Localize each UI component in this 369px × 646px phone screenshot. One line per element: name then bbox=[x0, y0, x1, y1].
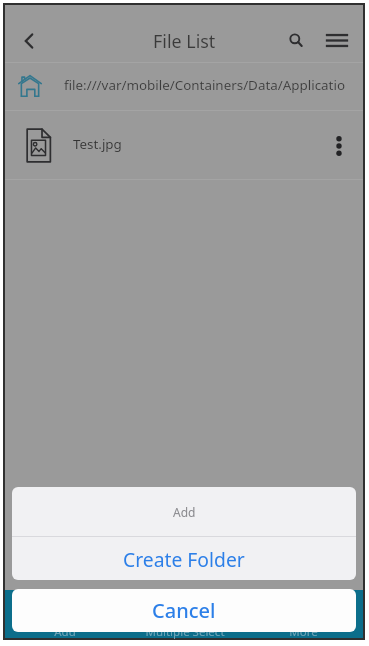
button[interactable]: Cancel bbox=[12, 589, 356, 632]
staticText: file:///var/mobile/Containers/Data/Appli… bbox=[64, 76, 346, 94]
button[interactable]: Back bbox=[13, 19, 53, 59]
staticText: Create Folder bbox=[123, 546, 245, 572]
button[interactable]: Menu bbox=[317, 19, 357, 59]
button[interactable]: More options bbox=[322, 129, 356, 163]
button[interactable]: Search bbox=[277, 19, 317, 59]
staticText: Cancel bbox=[152, 597, 216, 624]
button[interactable]: Multiple Select bbox=[125, 590, 244, 638]
button[interactable]: Add bbox=[5, 590, 125, 638]
button[interactable]: Create Folder bbox=[12, 537, 356, 580]
staticText: File List bbox=[153, 29, 216, 53]
staticText: Add bbox=[54, 624, 76, 640]
button[interactable]: Test.jpg bbox=[5, 111, 363, 180]
button[interactable]: file:///var/mobile/Containers/Data/Appli… bbox=[5, 63, 363, 111]
button[interactable]: More bbox=[244, 590, 363, 638]
staticText: Add bbox=[173, 504, 196, 520]
staticText: More bbox=[289, 624, 318, 640]
staticText: Test.jpg bbox=[73, 135, 122, 153]
staticText: Multiple Select bbox=[145, 624, 225, 640]
